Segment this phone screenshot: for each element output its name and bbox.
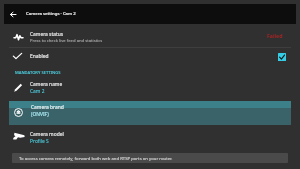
staticText: Failed xyxy=(267,32,283,39)
staticText: Enabled xyxy=(30,53,49,60)
button[interactable]: Camera model xyxy=(0,128,300,148)
staticText: Cam 2 xyxy=(30,88,45,95)
staticText: Camera settings · Cam 2 xyxy=(26,10,76,16)
staticText: Profile S xyxy=(30,138,49,145)
staticText: Camera status xyxy=(30,31,64,38)
staticText: MANDATORY SETTINGS xyxy=(15,70,61,76)
button[interactable]: Camera status xyxy=(0,26,300,47)
staticText: To access camera remotely, forward both … xyxy=(19,155,173,161)
staticText: (ONVIF) xyxy=(31,111,49,118)
staticText: Camera name xyxy=(30,81,63,88)
button[interactable]: Enabled xyxy=(0,48,300,65)
staticText: Camera model xyxy=(30,131,64,138)
button[interactable]: Camera name xyxy=(0,78,300,99)
button[interactable]: Camera brand xyxy=(9,101,291,125)
staticText: Camera brand xyxy=(31,104,64,111)
staticText: Press to check live feed and statistics xyxy=(30,38,103,44)
button[interactable]: Back xyxy=(4,8,21,20)
